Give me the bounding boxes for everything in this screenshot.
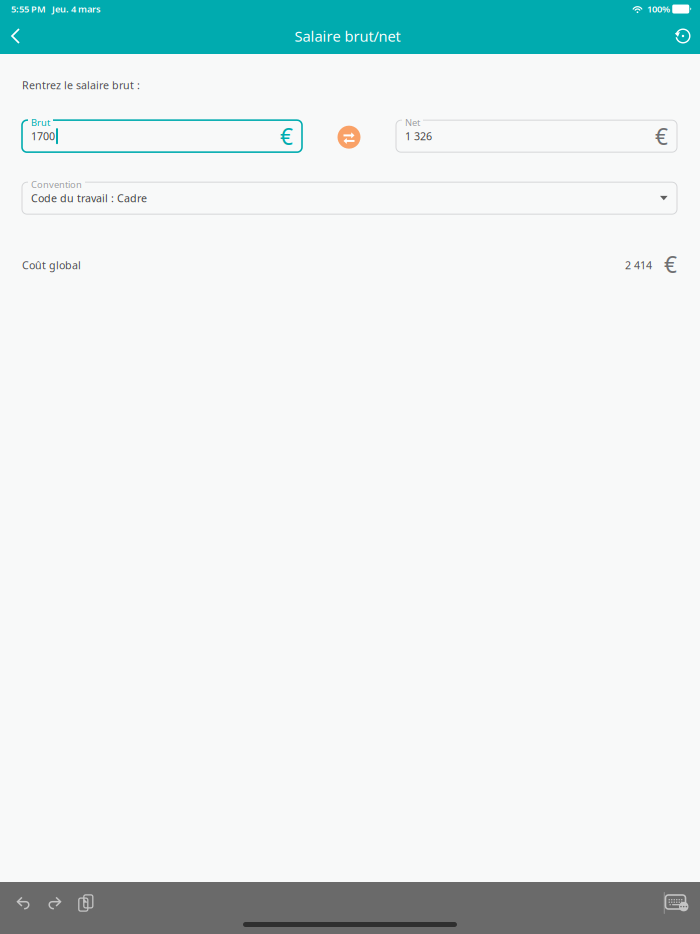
staticText: 100%: [643, 3, 670, 15]
staticText: Convention: [31, 178, 82, 191]
staticText: €: [646, 249, 677, 279]
staticText: Rentrez le salaire brut :: [22, 78, 140, 92]
button[interactable]: Historique: [668, 18, 698, 54]
button[interactable]: Clavier: [661, 886, 694, 920]
button[interactable]: Coller: [70, 886, 101, 920]
staticText: Net: [405, 116, 420, 129]
button[interactable]: Retour: [4, 18, 27, 54]
staticText: €: [280, 121, 293, 151]
staticText: 1 326: [405, 129, 432, 143]
button[interactable]: Inverser brut et net: [329, 117, 369, 157]
staticText: Coût global: [22, 258, 81, 272]
staticText: 5:55 PM: [11, 3, 46, 15]
button[interactable]: Annuler: [8, 886, 39, 920]
staticText: 2 414: [625, 258, 652, 272]
staticText: Jeu. 4 mars: [46, 3, 101, 15]
staticText: 1700: [31, 129, 55, 143]
staticText: Brut: [31, 116, 50, 129]
staticText: €: [655, 121, 668, 151]
button[interactable]: Rétablir: [39, 886, 70, 920]
staticText: Code du travail : Cadre: [31, 191, 147, 205]
staticText: Salaire brut/net: [294, 26, 400, 46]
